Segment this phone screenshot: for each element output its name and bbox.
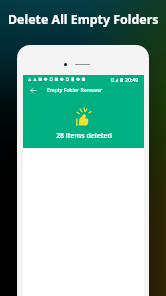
button[interactable]: Back [23, 83, 144, 98]
staticText: Delete All Empty Folders [8, 11, 159, 28]
staticText: Empty Folder Remover [47, 87, 103, 94]
staticText: 28 items deleted [56, 131, 112, 140]
staticText: 20:49 [125, 76, 139, 83]
button[interactable]: Back [28, 85, 39, 96]
